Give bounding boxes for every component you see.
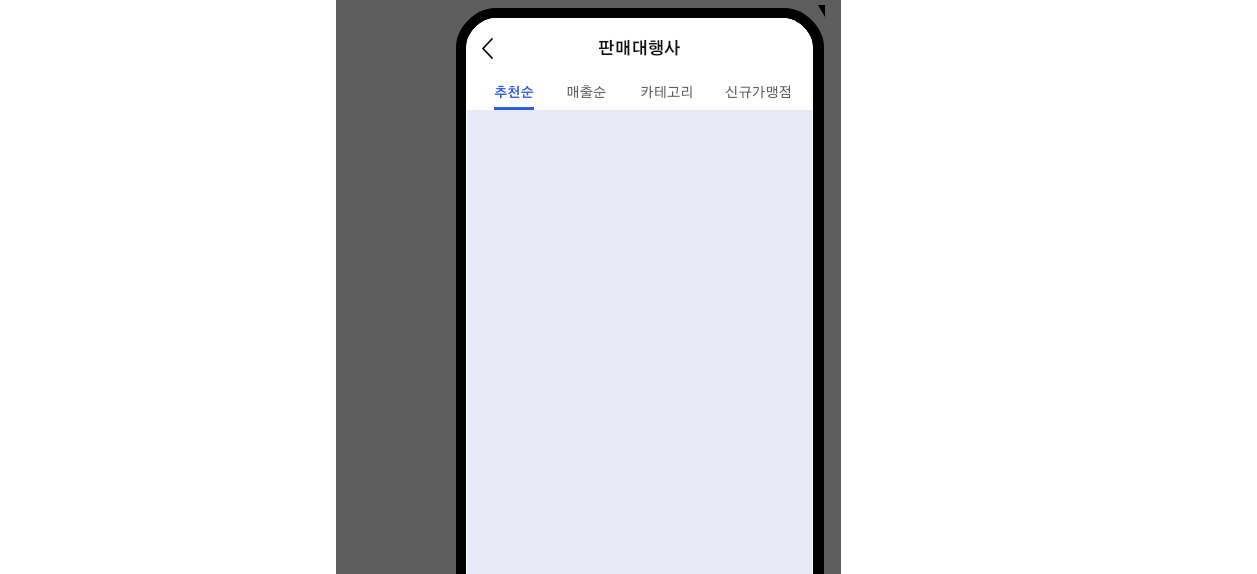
button[interactable]: 추천순 [478,68,550,110]
button[interactable]: 매출순 [550,68,623,110]
button[interactable]: 카테고리 [623,68,710,110]
staticText: 카테고리 [640,86,694,100]
button[interactable]: Back [466,26,509,70]
staticText: 신규가맹점 [725,86,793,100]
staticText: 판매대행사 [598,41,681,58]
button[interactable]: 신규가맹점 [710,68,808,110]
staticText: 추천순 [494,86,534,99]
staticText: 매출순 [566,86,607,100]
